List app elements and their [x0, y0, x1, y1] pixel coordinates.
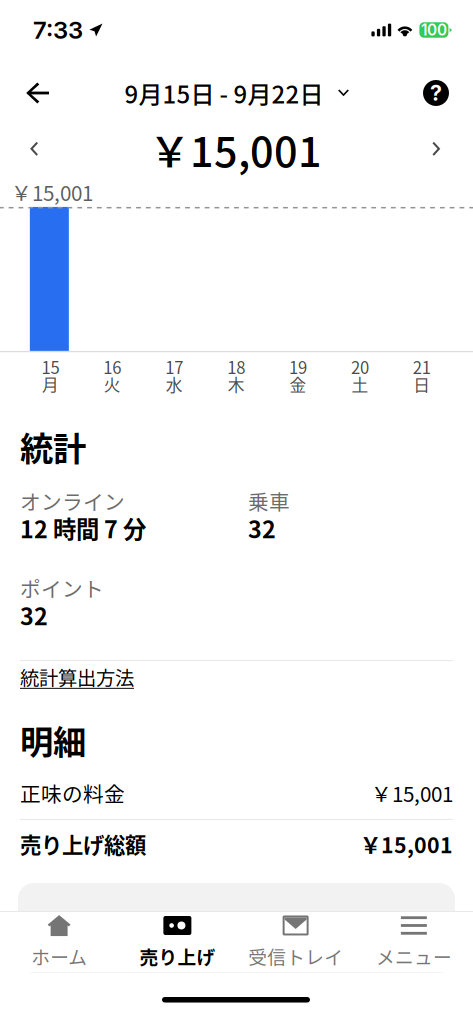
staticText: 17: [165, 355, 183, 379]
button[interactable]: 統計算出方法: [20, 661, 453, 689]
staticText: 乗車: [248, 486, 290, 516]
staticText: 12 時間 7 分: [20, 511, 146, 545]
staticText: 金: [290, 372, 307, 396]
button[interactable]: Back: [14, 70, 62, 116]
staticText: 統計: [20, 422, 86, 471]
staticText: 明細: [20, 716, 86, 764]
staticText: 100: [421, 21, 447, 39]
staticText: 統計算出方法: [20, 663, 134, 691]
staticText: 売り上げ: [139, 942, 215, 969]
staticText: ￥15,001: [11, 177, 93, 207]
staticText: 32: [20, 598, 48, 632]
staticText: ￥15,001: [371, 778, 453, 808]
staticText: 16: [103, 355, 121, 379]
staticText: 土: [351, 372, 368, 396]
button[interactable]: メニュー: [355, 912, 473, 972]
staticText: 21: [413, 355, 431, 379]
staticText: メニュー: [376, 942, 452, 969]
staticText: 木: [228, 372, 245, 396]
staticText: オンライン: [20, 486, 125, 516]
staticText: 15: [41, 355, 59, 379]
button[interactable]: Help: [412, 70, 460, 116]
button[interactable]: 9月15日 - 9月22日: [124, 70, 349, 116]
staticText: 売り上げ総額: [20, 829, 146, 859]
staticText: 9月15日 - 9月22日: [124, 76, 323, 110]
button[interactable]: Next week: [417, 127, 457, 171]
staticText: 32: [248, 511, 276, 545]
staticText: 19: [289, 355, 307, 379]
button[interactable]: ホーム: [0, 912, 118, 972]
staticText: 7:33: [33, 15, 83, 44]
button[interactable]: 受信トレイ: [236, 912, 355, 972]
button[interactable]: 売り上げ: [118, 912, 236, 972]
staticText: 18: [227, 355, 245, 379]
staticText: ?: [430, 80, 442, 106]
staticText: 正味の料金: [20, 778, 125, 808]
staticText: 火: [104, 372, 121, 396]
staticText: 月: [42, 372, 59, 396]
button[interactable]: Previous week: [14, 127, 54, 171]
staticText: ホーム: [31, 942, 87, 969]
staticText: ￥15,001: [149, 119, 322, 179]
staticText: ポイント: [20, 573, 104, 603]
staticText: 受信トレイ: [248, 942, 343, 969]
staticText: 20: [351, 355, 369, 379]
staticText: 水: [166, 372, 183, 396]
staticText: 日: [413, 372, 430, 396]
staticText: ￥15,001: [360, 829, 453, 859]
